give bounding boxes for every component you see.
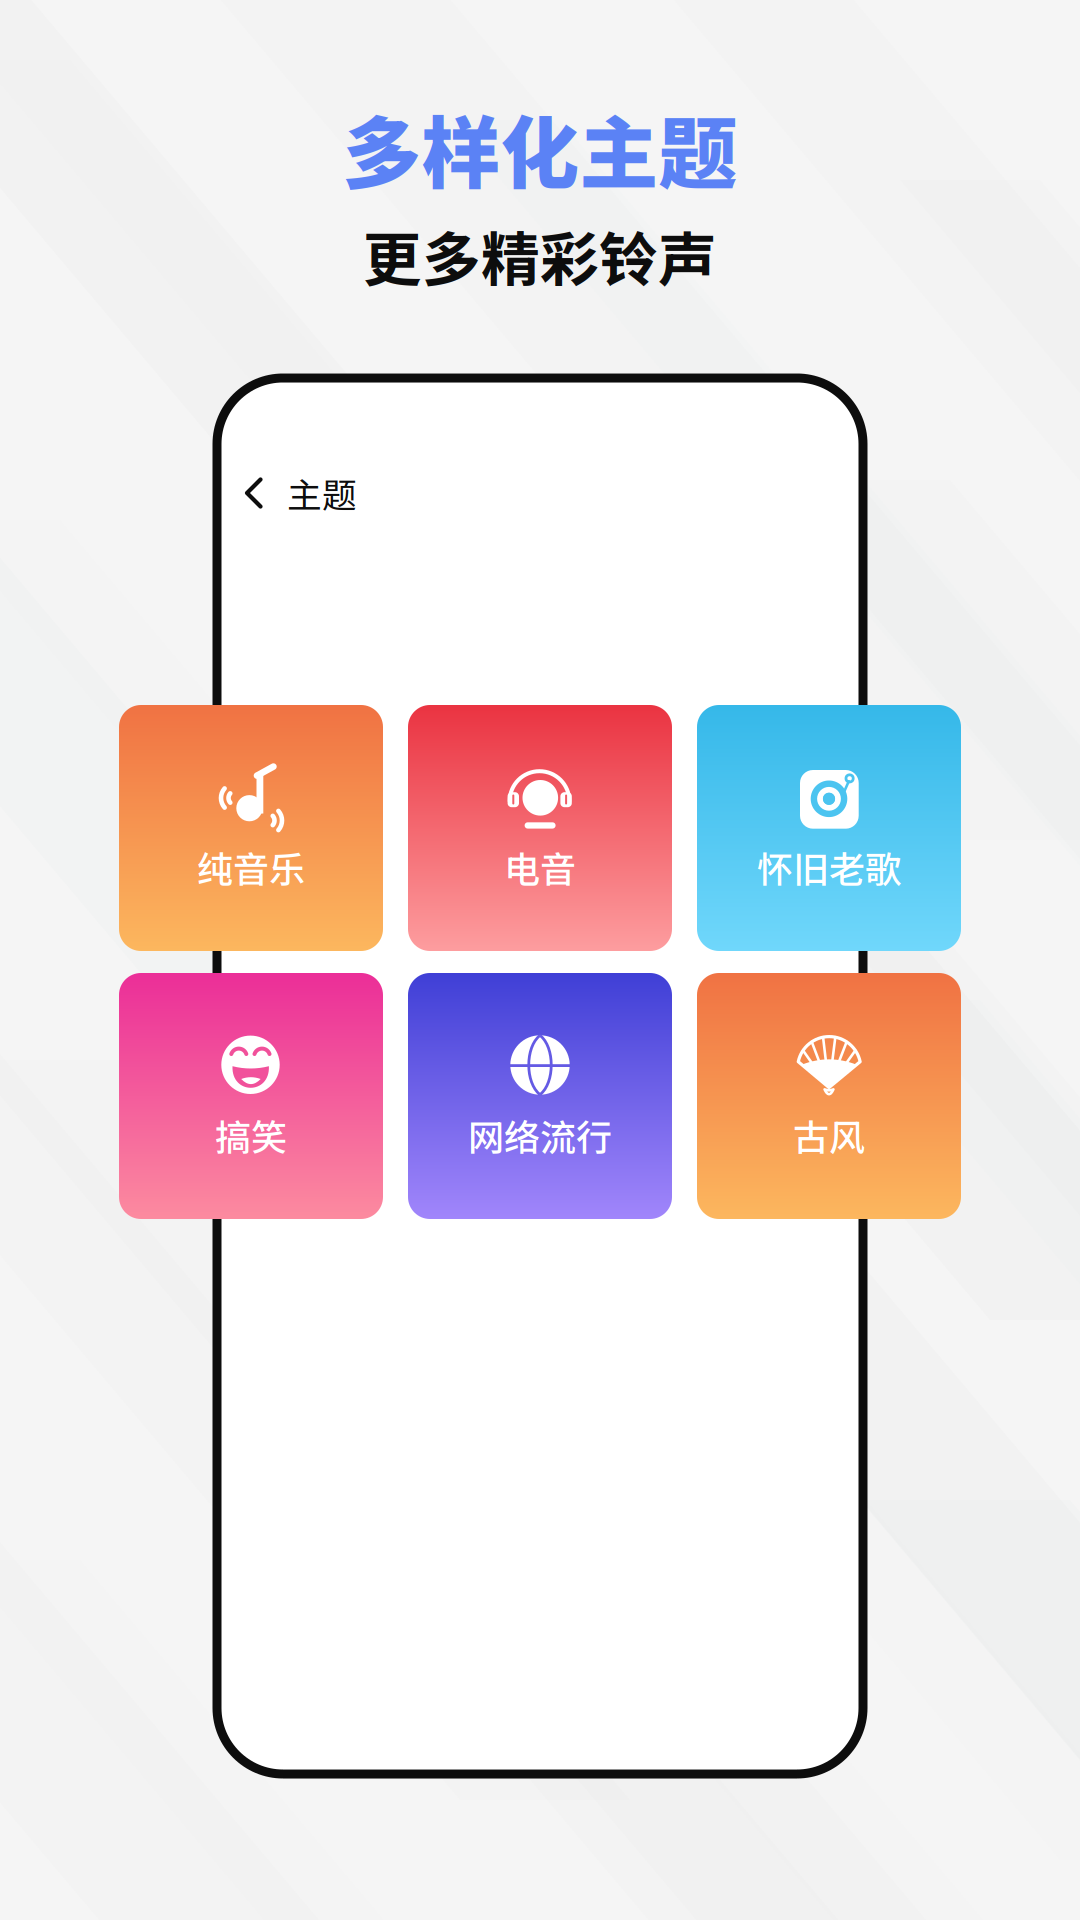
button[interactable]: 搞笑 (119, 973, 383, 1219)
staticText: 古风 (793, 1109, 865, 1161)
staticText: 多样化主题 (342, 91, 737, 205)
button[interactable]: 纯音乐 (119, 705, 383, 951)
button[interactable]: 网络流行 (408, 973, 672, 1219)
staticText: 主题 (287, 468, 357, 518)
button[interactable]: 怀旧老歌 (697, 705, 961, 951)
staticText: 怀旧老歌 (757, 841, 901, 893)
button[interactable]: 电音 (408, 705, 672, 951)
staticText: 纯音乐 (197, 841, 305, 893)
staticText: 网络流行 (468, 1109, 612, 1161)
staticText: 电音 (504, 841, 576, 893)
button[interactable]: 返回 主题 (244, 464, 357, 522)
button[interactable]: 古风 (697, 973, 961, 1219)
staticText: 更多精彩铃声 (363, 213, 717, 298)
staticText: 搞笑 (215, 1109, 287, 1161)
